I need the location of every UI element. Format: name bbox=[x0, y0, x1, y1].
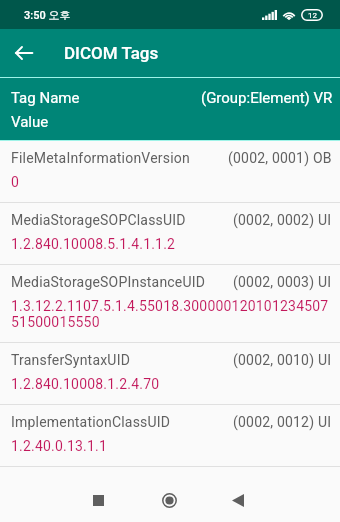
button[interactable]: TransferSyntaxUID bbox=[0, 343, 340, 405]
button[interactable]: MediaStorageSOPInstanceUID bbox=[0, 265, 340, 343]
button[interactable]: ImplementationClassUID bbox=[0, 405, 340, 467]
staticText: 1.2.840.10008.1.2.4.70 bbox=[11, 376, 332, 392]
staticText: 1.2.40.0.13.1.1 bbox=[11, 438, 332, 454]
staticText: (Group:Element) VR bbox=[201, 89, 333, 107]
staticText: 1.3.12.2.1107.5.1.4.55018.30000012010123… bbox=[11, 298, 332, 330]
staticText: (0002, 0012) UI bbox=[233, 414, 332, 430]
staticText: Value bbox=[11, 113, 49, 131]
staticText: TransferSyntaxUID bbox=[11, 352, 131, 368]
button[interactable]: FileMetaInformationVersion bbox=[0, 141, 340, 203]
staticText: (0002, 0010) UI bbox=[233, 352, 332, 368]
staticText: FileMetaInformationVersion bbox=[11, 150, 190, 166]
staticText: ImplementationClassUID bbox=[11, 414, 171, 430]
staticText: MediaStorageSOPInstanceUID bbox=[11, 274, 206, 290]
staticText: MediaStorageSOPClassUID bbox=[11, 212, 186, 228]
button[interactable]: MediaStorageSOPClassUID bbox=[0, 203, 340, 265]
staticText: Tag Name bbox=[11, 89, 80, 107]
staticText: DICOM Tags bbox=[64, 43, 159, 63]
button[interactable]: Recent apps bbox=[76, 478, 120, 522]
staticText: (0002, 0003) UI bbox=[233, 274, 332, 290]
staticText: 3:50 오후 bbox=[24, 8, 71, 22]
staticText: 1.2.840.10008.5.1.4.1.1.2 bbox=[11, 236, 332, 252]
button[interactable]: Home bbox=[147, 478, 191, 522]
staticText: (0002, 0001) OB bbox=[228, 150, 332, 166]
staticText: (0002, 0002) UI bbox=[233, 212, 332, 228]
button[interactable]: Back bbox=[216, 478, 260, 522]
button[interactable]: Navigate up bbox=[0, 29, 48, 77]
staticText: 0 bbox=[11, 174, 332, 190]
staticText: 12 bbox=[308, 11, 317, 20]
